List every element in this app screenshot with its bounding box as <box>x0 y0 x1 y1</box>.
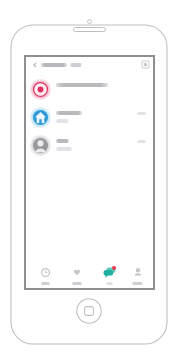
button[interactable]: Sleep <box>29 265 61 285</box>
button[interactable] <box>26 131 153 159</box>
button[interactable] <box>26 75 153 103</box>
button[interactable]: Delete <box>142 61 149 68</box>
button[interactable]: Back <box>30 60 39 69</box>
button[interactable]: Home <box>76 298 102 324</box>
button[interactable]: Settings <box>125 265 150 285</box>
button[interactable]: Chat <box>93 265 125 285</box>
button[interactable]: Health <box>61 265 93 285</box>
button[interactable] <box>26 103 153 131</box>
